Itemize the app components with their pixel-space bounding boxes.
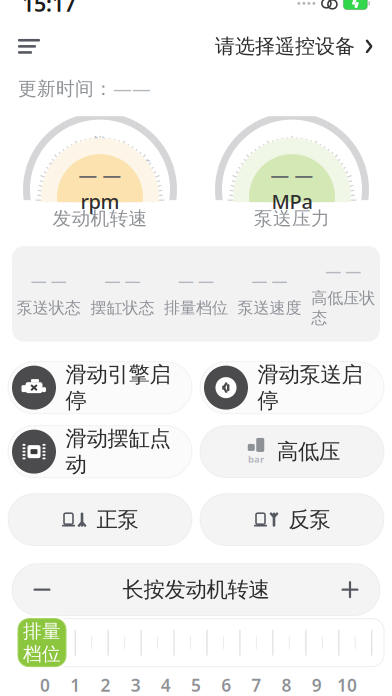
staticText: 6 (221, 674, 231, 696)
staticText: 正泵 (96, 506, 138, 533)
staticText: — — (104, 270, 140, 291)
button[interactable]: bar (200, 426, 384, 478)
staticText: 0 (40, 674, 50, 696)
staticText: 2000 (84, 142, 116, 160)
staticText: 滑动引擎启停 (65, 361, 170, 414)
staticText: 更新时间： (18, 77, 113, 100)
button[interactable]: 菜单 (18, 27, 52, 65)
staticText: 请选择遥控设备 (215, 34, 355, 59)
staticText: 高低压状态 (311, 288, 375, 328)
staticText: 10 (337, 674, 357, 696)
button[interactable]: 滑动摆缸点动 (8, 426, 192, 478)
staticText: MPa (271, 188, 312, 214)
staticText: 0 (96, 142, 104, 160)
button[interactable]: 减少 (12, 564, 72, 616)
staticText: 15:17 (22, 0, 76, 17)
button[interactable]: 请选择遥控设备 (215, 28, 374, 65)
staticText: 1 (70, 674, 80, 696)
button[interactable]: 增加 (320, 564, 380, 616)
staticText: 1000 (84, 142, 116, 160)
staticText: 长按发动机转速 (122, 576, 269, 603)
staticText: — — (78, 162, 121, 187)
button[interactable]: 滑动引擎启停 (8, 362, 192, 414)
staticText: 3 (131, 674, 141, 696)
button[interactable]: 正泵 (8, 494, 192, 546)
staticText: —— (113, 76, 151, 101)
staticText: 高低压 (277, 438, 340, 465)
staticText: — — (252, 270, 288, 291)
staticText: 7 (251, 674, 261, 696)
staticText: 泵送压力 (254, 207, 330, 230)
staticText: 排量 (23, 620, 61, 643)
staticText: — — (270, 162, 313, 187)
staticText: 9 (312, 674, 322, 696)
staticText: 30 (284, 142, 300, 160)
staticText: 泵送状态 (17, 298, 81, 318)
staticText: 发动机转速 (52, 207, 147, 230)
staticText: 8 (281, 674, 291, 696)
staticText: 泵送速度 (238, 298, 302, 318)
staticText: — — (325, 260, 361, 281)
staticText: 0 (288, 142, 296, 160)
staticText: 15 (284, 142, 300, 160)
button[interactable]: 排量 (15, 616, 69, 670)
staticText: 5 (191, 674, 201, 696)
staticText: 档位 (23, 643, 61, 665)
staticText: 反泵 (288, 506, 330, 533)
staticText: 滑动摆缸点动 (65, 425, 170, 478)
staticText: 4 (161, 674, 171, 696)
staticText: 滑动泵送启停 (257, 361, 362, 414)
staticText: bar (248, 453, 264, 465)
button[interactable]: 反泵 (200, 494, 384, 546)
staticText: 3000 (84, 142, 116, 160)
staticText: — — (31, 270, 67, 291)
staticText: 45 (284, 142, 300, 160)
staticText: rpm (80, 188, 119, 214)
staticText: 2 (100, 674, 110, 696)
button[interactable]: 滑动泵送启停 (200, 362, 384, 414)
staticText: — — (178, 270, 214, 291)
staticText: 排量档位 (164, 298, 228, 318)
staticText: 摆缸状态 (90, 298, 154, 318)
